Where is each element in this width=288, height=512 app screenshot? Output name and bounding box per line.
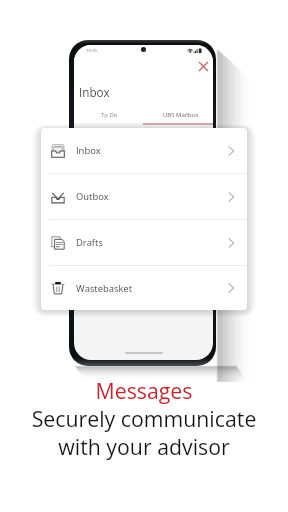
staticText: Messages <box>0 376 288 405</box>
staticText: Inbox <box>79 84 110 100</box>
button[interactable]: Drafts <box>41 220 247 265</box>
staticText: To Do <box>101 111 118 119</box>
staticText: Inbox <box>76 144 101 157</box>
button[interactable]: UBS Mailbox <box>143 109 213 121</box>
staticText: UBS Mailbox <box>163 111 199 119</box>
staticText: Drafts <box>76 236 103 249</box>
button[interactable]: Outbox <box>41 174 247 219</box>
staticText: Outbox <box>76 190 109 203</box>
button[interactable]: Wastebasket <box>41 266 247 310</box>
button[interactable]: Inbox <box>41 128 247 173</box>
staticText: Wastebasket <box>76 282 132 295</box>
button[interactable]: Close <box>195 58 211 74</box>
button[interactable]: To Do <box>74 109 143 121</box>
staticText: 10:19 <box>86 48 97 54</box>
staticText: Securely communicate with your advisor <box>0 404 288 462</box>
